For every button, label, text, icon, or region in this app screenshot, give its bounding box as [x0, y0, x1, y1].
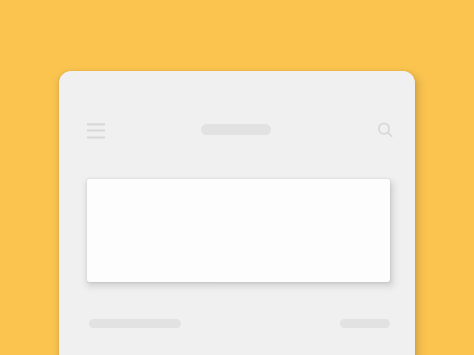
button[interactable]: Search: [374, 115, 398, 139]
button[interactable]: Open navigation menu: [83, 115, 108, 141]
